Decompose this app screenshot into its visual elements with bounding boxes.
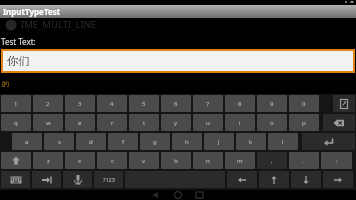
staticText: : (336, 157, 338, 165)
button[interactable]: g (140, 133, 170, 150)
button[interactable]: o (257, 114, 287, 131)
button[interactable]: f (108, 133, 138, 150)
staticText: t (143, 119, 146, 127)
staticText: v (142, 157, 146, 165)
button[interactable]: Up (259, 171, 289, 188)
staticText: r (111, 119, 114, 127)
button[interactable]: ?123 (94, 171, 123, 188)
button[interactable]: IME_MULTI_LINE (0, 18, 97, 31)
staticText: l (282, 138, 284, 146)
staticText: b (174, 157, 178, 165)
button[interactable]: w (33, 114, 63, 131)
staticText: 4 (110, 100, 114, 108)
staticText: k (249, 138, 253, 146)
button[interactable]: 8 (225, 95, 255, 112)
button[interactable]: Down (291, 171, 321, 188)
staticText: IME_MULTI_LINE (21, 18, 97, 31)
button[interactable]: 你们 (3, 51, 353, 71)
staticText: g (153, 138, 157, 146)
button[interactable]: Tab (32, 171, 61, 188)
button[interactable]: 9 (257, 95, 287, 112)
staticText: 1 (14, 100, 18, 108)
button[interactable]: h (172, 133, 202, 150)
staticText: j (218, 138, 220, 146)
button[interactable]: q (1, 114, 31, 131)
button[interactable]: d (76, 133, 106, 150)
button[interactable]: 6 (161, 95, 191, 112)
button[interactable]: j (204, 133, 234, 150)
button[interactable]: k (236, 133, 266, 150)
staticText: 5 (142, 100, 146, 108)
button[interactable]: v (129, 152, 159, 169)
staticText: 0 (302, 100, 306, 108)
staticText: e (78, 119, 82, 127)
button[interactable]: b (161, 152, 191, 169)
button[interactable]: t (129, 114, 159, 131)
staticText: f (122, 138, 125, 146)
staticText: s (58, 138, 61, 146)
staticText: u (206, 119, 210, 127)
button[interactable]: n (193, 152, 223, 169)
button[interactable]: Enter (302, 133, 355, 150)
button[interactable]: Settings (333, 95, 355, 112)
staticText: h (185, 138, 189, 146)
button[interactable]: z (33, 152, 63, 169)
staticText: 2 (46, 100, 50, 108)
button[interactable]: Left (227, 171, 257, 188)
button[interactable]: Switch keyboard (1, 171, 30, 188)
staticText: z (47, 157, 50, 165)
button[interactable]: , (257, 152, 287, 169)
staticText: x (78, 157, 82, 165)
staticText: c (111, 157, 114, 165)
button[interactable]: s (44, 133, 74, 150)
button[interactable]: Right (323, 171, 353, 188)
staticText: n (206, 157, 210, 165)
staticText: y (174, 119, 178, 127)
button[interactable]: Backspace (323, 114, 355, 131)
button[interactable]: c (97, 152, 127, 169)
staticText: Test Text: (1, 36, 36, 47)
staticText: q (14, 119, 18, 127)
button[interactable]: 3 (65, 95, 95, 112)
button[interactable]: e (65, 114, 95, 131)
button[interactable]: Voice input (63, 171, 92, 188)
button[interactable]: y (161, 114, 191, 131)
button[interactable]: 0 (289, 95, 319, 112)
staticText: o (270, 119, 274, 127)
staticText: 6 (174, 100, 178, 108)
button[interactable]: 2 (33, 95, 63, 112)
staticText: d (89, 138, 93, 146)
button[interactable]: m (225, 152, 255, 169)
button[interactable]: 1 (1, 95, 31, 112)
staticText: w (46, 119, 51, 127)
button[interactable]: x (65, 152, 95, 169)
staticText: 3 (78, 100, 82, 108)
staticText: . (303, 157, 305, 165)
staticText: 的 (2, 79, 9, 88)
staticText: p (302, 119, 306, 127)
button[interactable]: a (12, 133, 42, 150)
staticText: 9 (270, 100, 274, 108)
button[interactable]: 5 (129, 95, 159, 112)
staticText: i (239, 119, 241, 127)
button[interactable]: p (289, 114, 319, 131)
button[interactable]: 7 (193, 95, 223, 112)
button[interactable]: l (268, 133, 298, 150)
staticText: a (25, 138, 29, 146)
button[interactable]: : (321, 152, 352, 169)
staticText: , (271, 157, 273, 165)
staticText: 你们 (7, 54, 30, 68)
staticText: m (237, 157, 243, 165)
button[interactable]: Shift (1, 152, 31, 169)
staticText: 8 (238, 100, 242, 108)
staticText: ?123 (103, 176, 115, 183)
button[interactable]: i (225, 114, 255, 131)
button[interactable]: 4 (97, 95, 127, 112)
button[interactable]: u (193, 114, 223, 131)
button[interactable]: r (97, 114, 127, 131)
staticText: 7 (206, 100, 210, 108)
staticText: InputTypeTest (3, 6, 61, 17)
